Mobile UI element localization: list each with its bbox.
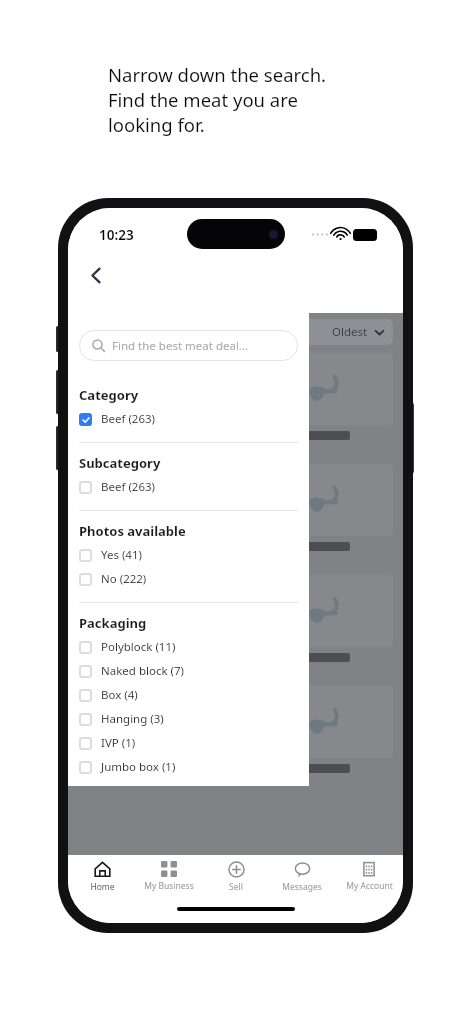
button[interactable]: No (222) (79, 567, 298, 591)
button[interactable]: Naked block (7) (79, 659, 298, 683)
staticText: Find the meat you are (108, 87, 298, 112)
button[interactable]: Beef (263) (79, 407, 298, 431)
staticText: My Account (346, 880, 393, 892)
button[interactable]: IVP (1) (79, 731, 298, 755)
staticText: Yes (41) (101, 547, 142, 563)
staticText: IVP (1) (101, 735, 136, 751)
staticText: 10:23 (99, 226, 134, 244)
staticText: Narrow down the search. (108, 62, 327, 87)
staticText: Beef (263) (101, 479, 156, 495)
button[interactable]: Jumbo box (1) (79, 755, 298, 779)
button[interactable]: Yes (41) (79, 543, 298, 567)
staticText: Jumbo box (1) (101, 759, 176, 775)
staticText: Hanging (3) (101, 711, 164, 727)
staticText: Naked block (7) (101, 663, 185, 679)
button[interactable]: Oldest (243, 319, 393, 345)
button[interactable]: My Account (336, 861, 402, 892)
staticText: Find the best meat deal... (112, 338, 249, 354)
staticText: My Business (144, 880, 194, 892)
button[interactable]: Hanging (3) (79, 707, 298, 731)
button[interactable]: Back (76, 255, 116, 295)
button[interactable]: Find the best meat deal... (79, 330, 298, 361)
staticText: Home (90, 881, 115, 893)
staticText: Messages (282, 881, 322, 893)
staticText: No (222) (101, 571, 147, 587)
staticText: Beef (263) (101, 411, 156, 427)
staticText: Sell (229, 881, 243, 893)
staticText: Box (4) (101, 687, 138, 703)
staticText: Oldest (332, 324, 368, 340)
button[interactable]: Sell (203, 861, 269, 893)
staticText: Category (79, 386, 139, 404)
staticText: looking for. (108, 112, 205, 137)
button[interactable]: Polyblock (11) (79, 635, 298, 659)
staticText: Photos available (79, 522, 186, 540)
button[interactable]: Beef (263) (79, 475, 298, 499)
button[interactable]: Messages (269, 861, 335, 893)
button[interactable]: Box (4) (79, 683, 298, 707)
button[interactable]: Home (69, 861, 135, 893)
button[interactable]: My Business (136, 861, 202, 892)
staticText: Polyblock (11) (101, 639, 176, 655)
staticText: Subcategory (79, 454, 161, 472)
staticText: Packaging (79, 614, 147, 632)
